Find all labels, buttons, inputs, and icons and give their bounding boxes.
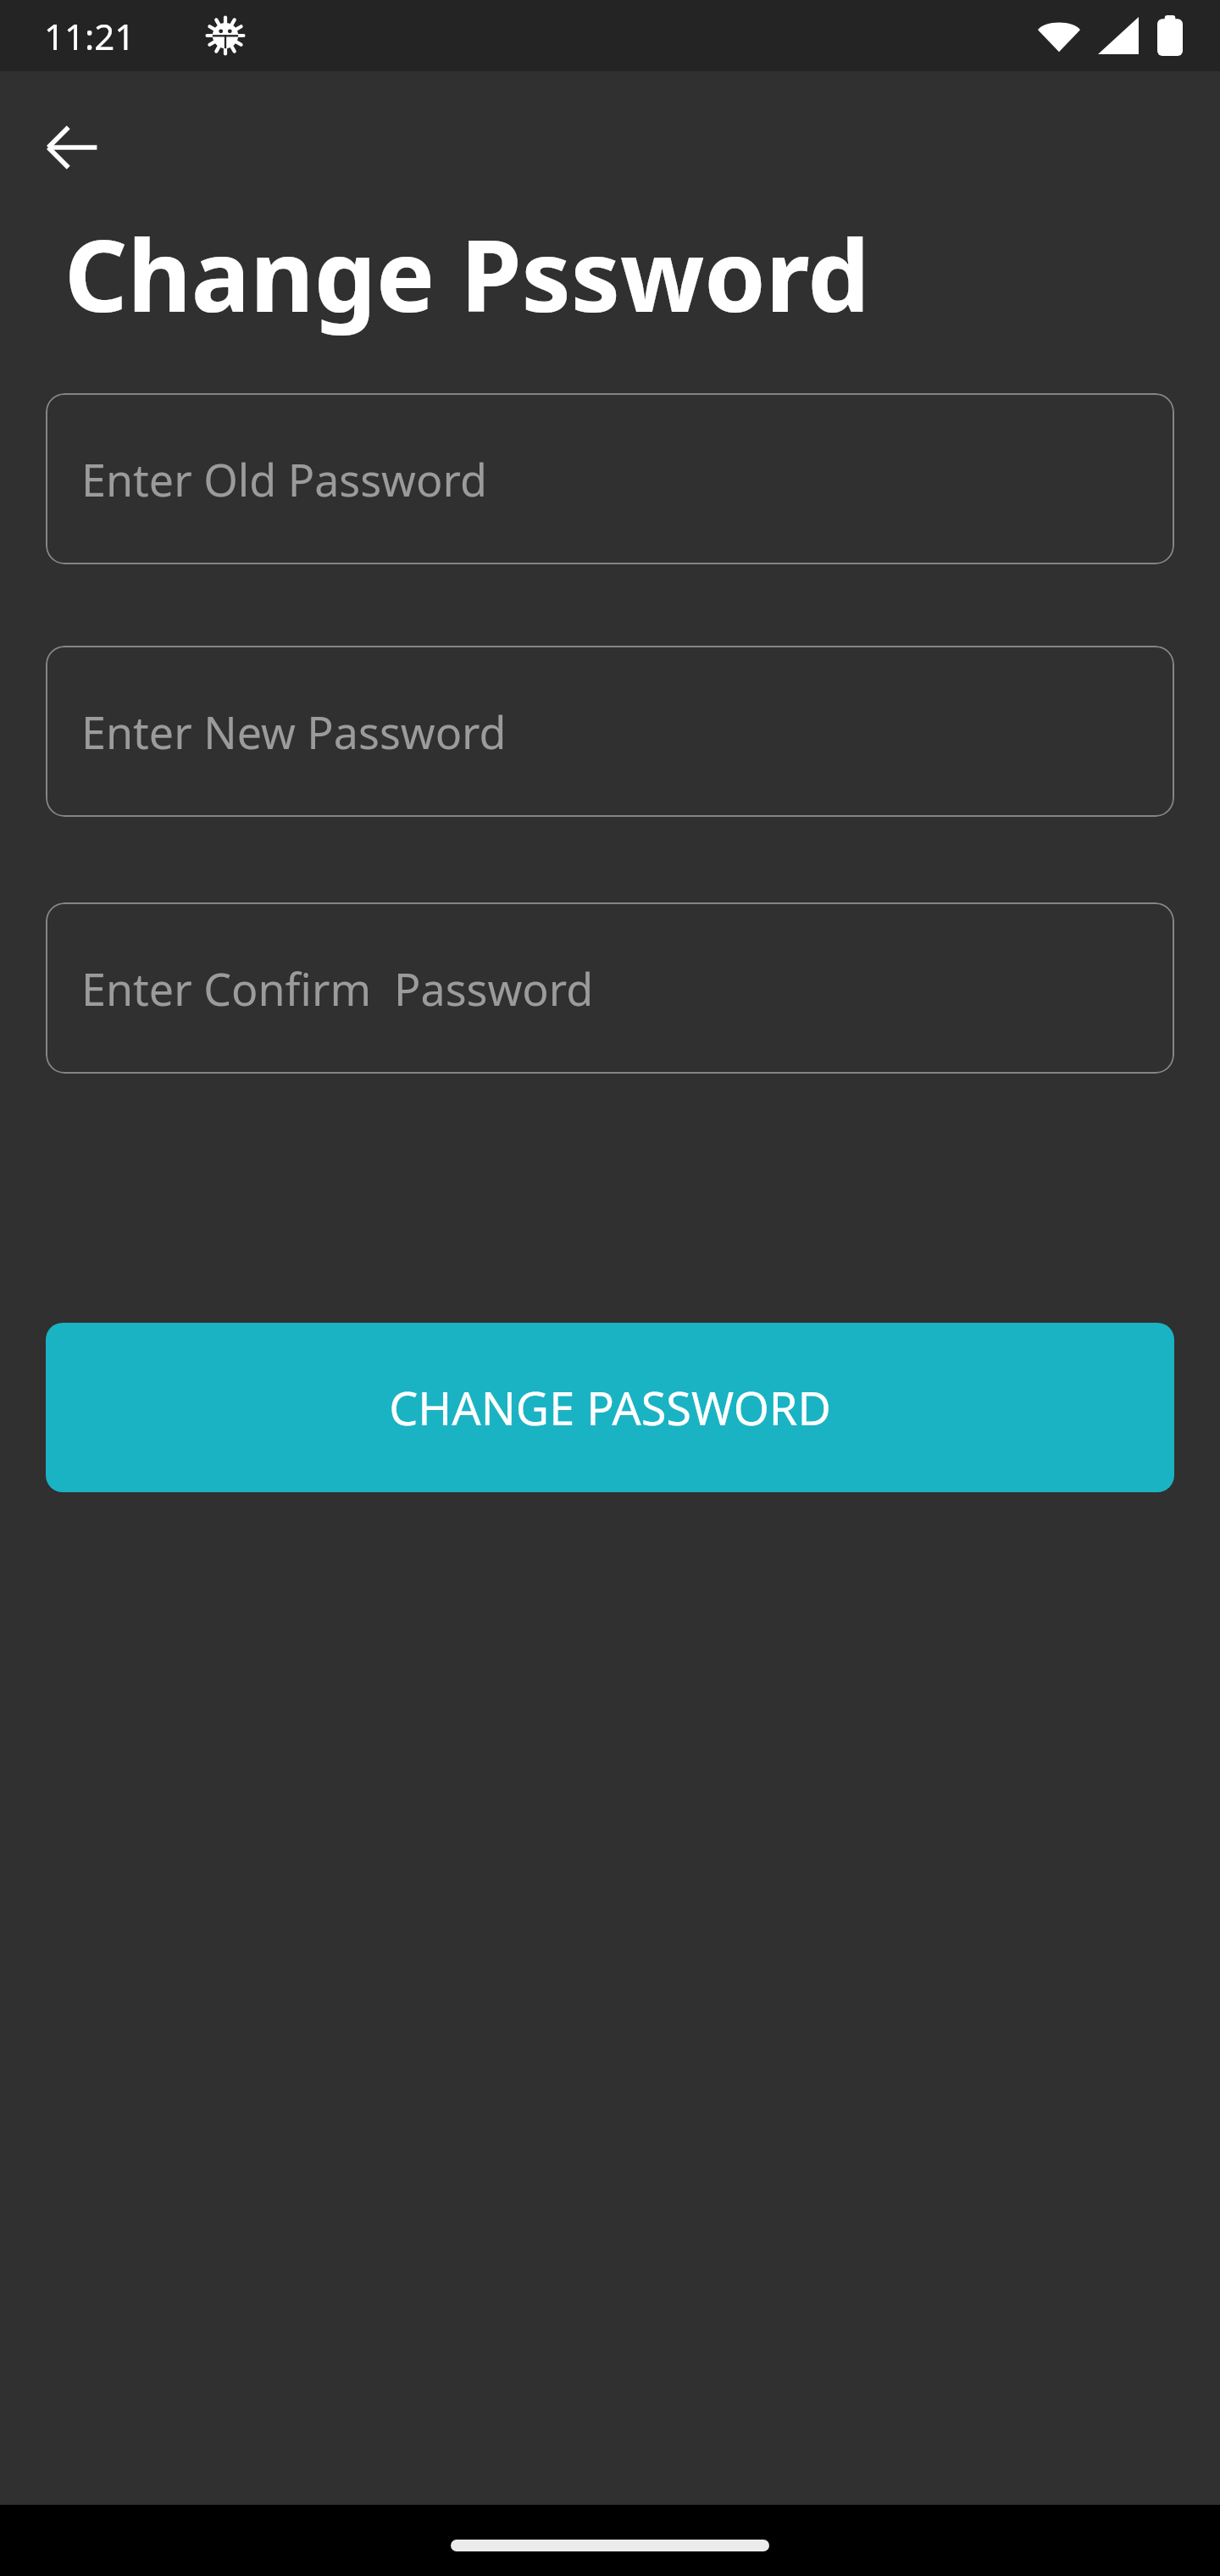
- staticText: CHANGE PASSWORD: [389, 1376, 831, 1439]
- staticText: Enter Old Password: [81, 449, 487, 509]
- button[interactable]: CHANGE PASSWORD: [46, 1323, 1174, 1492]
- staticText: 11:21: [44, 12, 136, 60]
- staticText: Change Pssword: [64, 207, 870, 341]
- button[interactable]: Back: [25, 100, 120, 195]
- staticText: Enter New Password: [81, 702, 507, 762]
- staticText: Enter Confirm Password: [81, 958, 594, 1019]
- button[interactable]: Enter New Password: [46, 646, 1174, 817]
- button[interactable]: Enter Old Password: [46, 393, 1174, 564]
- button[interactable]: Enter Confirm Password: [46, 902, 1174, 1074]
